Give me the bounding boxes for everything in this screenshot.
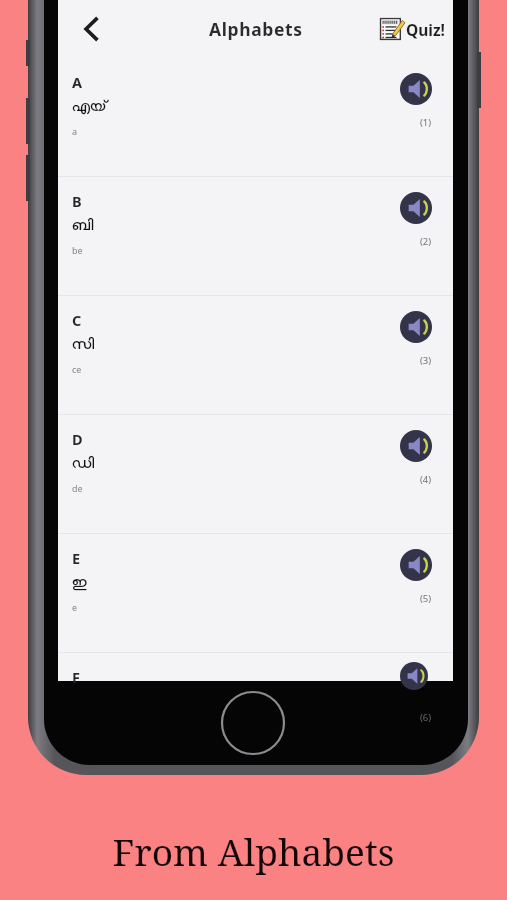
staticText: e — [72, 601, 78, 613]
button[interactable]: D — [58, 415, 453, 533]
staticText: (3) — [420, 354, 432, 367]
staticText: ഇ — [72, 575, 87, 590]
staticText: ബി — [72, 218, 94, 233]
staticText: de — [72, 482, 83, 494]
button[interactable]: A — [58, 58, 453, 176]
button[interactable]: B — [58, 177, 453, 295]
staticText: E — [72, 548, 81, 568]
staticText: (6) — [420, 711, 432, 724]
button[interactable]: Play pronunciation — [394, 305, 438, 349]
button[interactable]: F — [58, 653, 453, 681]
button[interactable]: Play pronunciation — [394, 424, 438, 468]
staticText: D — [72, 429, 83, 449]
button[interactable]: C — [58, 296, 453, 414]
staticText: Quiz! — [406, 19, 445, 40]
button[interactable]: Play pronunciation — [394, 543, 438, 587]
button[interactable]: Back — [66, 3, 118, 55]
staticText: (5) — [420, 592, 432, 605]
staticText: F — [72, 667, 80, 687]
staticText: (4) — [420, 473, 432, 486]
staticText: From Alphabets — [112, 826, 395, 876]
button[interactable]: Play pronunciation — [394, 67, 438, 111]
button[interactable]: Play pronunciation — [394, 662, 438, 690]
staticText: B — [72, 191, 82, 211]
staticText: be — [72, 244, 83, 256]
staticText: എയ് — [72, 99, 107, 114]
staticText: (2) — [420, 235, 432, 248]
staticText: ഡി — [72, 456, 95, 471]
button[interactable]: Quiz! — [379, 7, 445, 51]
staticText: A — [72, 72, 83, 92]
staticText: ce — [72, 363, 82, 375]
staticText: (1) — [420, 116, 432, 129]
staticText: C — [72, 310, 82, 330]
button[interactable]: E — [58, 534, 453, 652]
button[interactable]: Home — [218, 688, 288, 758]
staticText: a — [72, 125, 78, 137]
staticText: Alphabets — [209, 17, 303, 41]
staticText: സി — [72, 337, 94, 352]
button[interactable]: Play pronunciation — [394, 186, 438, 230]
